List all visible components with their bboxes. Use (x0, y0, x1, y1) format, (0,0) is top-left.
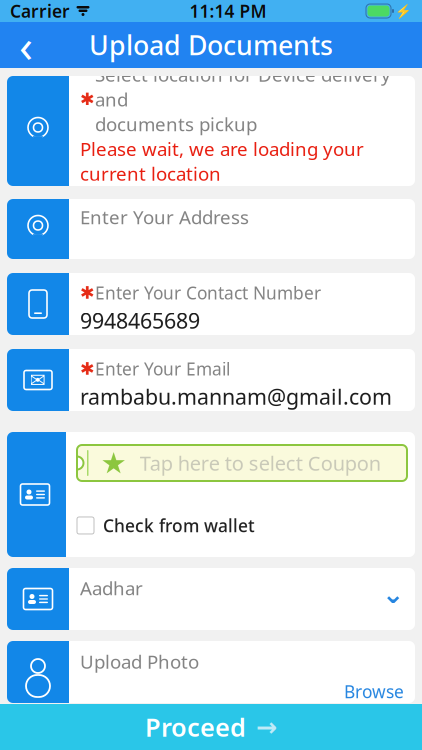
staticText: Aadhar (80, 576, 143, 600)
button[interactable]: ✱ (7, 273, 415, 335)
button[interactable]: Aadhar (7, 568, 415, 630)
staticText: ‹ (19, 15, 33, 75)
button[interactable]: ▾ (7, 76, 415, 186)
staticText: Please wait, we are loading your current… (80, 136, 364, 186)
button[interactable]: Back (0, 22, 52, 68)
staticText: ✱ (80, 359, 95, 379)
staticText: 11:14 PM (189, 0, 266, 22)
staticText: ⚡ (395, 3, 412, 19)
button[interactable]: ▾ (7, 199, 415, 259)
button[interactable]: ✉ (7, 349, 415, 411)
button[interactable]: ★ (77, 445, 407, 481)
staticText: Enter Your Contact Number (95, 281, 321, 304)
staticText: Tap here to select Coupon (140, 450, 381, 476)
staticText: Enter Your Email (95, 357, 230, 380)
staticText: Upload Documents (89, 27, 333, 63)
staticText: ▾ (32, 127, 43, 152)
staticText: ▾ (32, 225, 43, 250)
button[interactable]: Proceed (0, 704, 422, 750)
staticText: Upload Photo (80, 649, 199, 674)
staticText: ⌄ (382, 579, 404, 609)
staticText: ✉ (29, 369, 46, 391)
staticText: Check from wallet (103, 514, 255, 537)
staticText: → (256, 713, 277, 741)
staticText: ✱ (80, 283, 95, 303)
staticText: Enter Your Address (80, 205, 249, 229)
button[interactable]: Upload Photo (7, 641, 415, 703)
button[interactable]: ★ (7, 432, 415, 557)
staticText: Proceed (145, 710, 246, 744)
staticText: rambabu.mannam@gmail.com (80, 382, 392, 411)
staticText: ★ (100, 446, 126, 480)
staticText: Select location for Device delivery and … (95, 62, 391, 136)
staticText: 9948465689 (80, 306, 200, 335)
staticText: Carrier (10, 0, 70, 22)
staticText: Browse (344, 680, 404, 703)
staticText: ✱ (80, 89, 95, 109)
